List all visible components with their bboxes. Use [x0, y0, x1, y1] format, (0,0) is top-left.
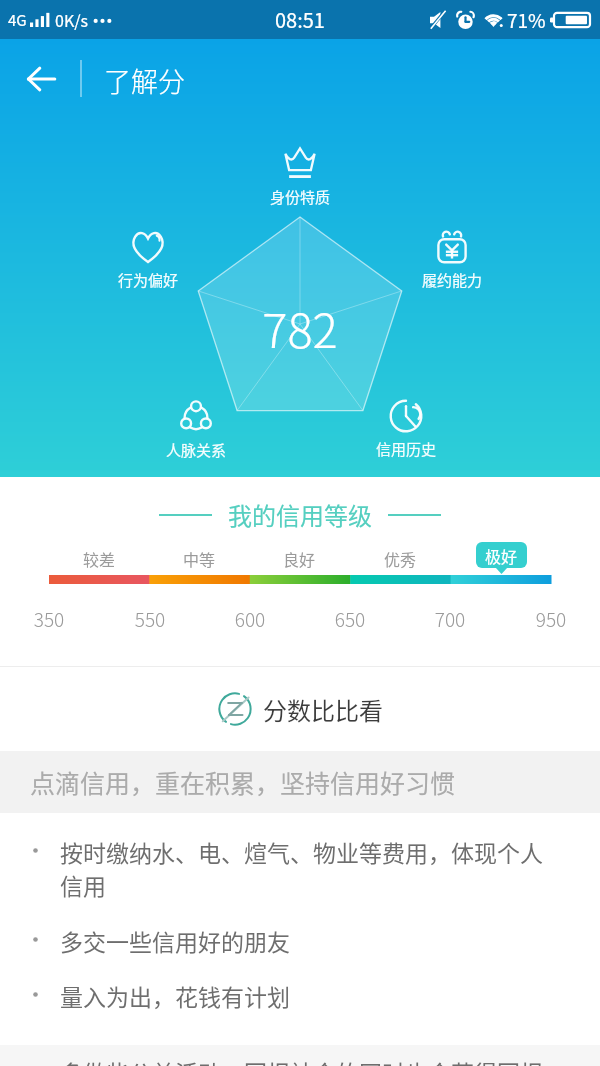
- button[interactable]: Back: [14, 52, 68, 106]
- staticText: 350: [9, 605, 89, 633]
- staticText: 650: [310, 605, 390, 633]
- staticText: 良好: [259, 547, 339, 570]
- staticText: 4G: [8, 9, 27, 31]
- staticText: 08:51: [275, 5, 325, 34]
- staticText: 550: [110, 605, 190, 633]
- staticText: 多做些公益活动，回报社会的同时也会获得回报: [60, 1055, 543, 1066]
- button[interactable]: 行为偏好: [98, 230, 198, 291]
- staticText: 950: [511, 605, 591, 633]
- button[interactable]: 信用历史: [356, 399, 456, 460]
- staticText: 了解分: [104, 61, 185, 100]
- staticText: 极好: [485, 544, 518, 567]
- staticText: 信用历史: [376, 438, 437, 460]
- staticText: 按时缴纳水、电、煊气、物业等费用，体现个人信用: [60, 835, 548, 902]
- button[interactable]: 分数比比看: [0, 667, 600, 751]
- staticText: 分数比比看: [263, 692, 383, 727]
- staticText: 点滴信用，重在积累，坚持信用好习惯: [30, 764, 456, 800]
- staticText: 782: [0, 293, 600, 361]
- staticText: 身份特质: [270, 186, 331, 208]
- staticText: 优秀: [360, 547, 440, 570]
- button[interactable]: 身份特质: [250, 147, 350, 208]
- staticText: 量入为出，花钱有计划: [60, 979, 290, 1012]
- staticText: 人脉关系: [166, 439, 227, 461]
- button[interactable]: 量入为出，花钱有计划: [0, 957, 600, 1012]
- button[interactable]: 人脉关系: [146, 400, 246, 461]
- staticText: 0K/s: [55, 8, 88, 31]
- staticText: 多交一些信用好的朋友: [60, 924, 290, 957]
- staticText: 中等: [159, 547, 239, 570]
- staticText: 行为偏好: [118, 269, 179, 291]
- button[interactable]: 履约能力: [402, 230, 502, 291]
- staticText: 我的信用等级: [228, 497, 372, 532]
- button[interactable]: 多做些公益活动，回报社会的同时也会获得回报: [0, 1045, 600, 1066]
- staticText: 700: [410, 605, 490, 633]
- staticText: 履约能力: [422, 269, 483, 291]
- staticText: 600: [210, 605, 290, 633]
- button[interactable]: 极好: [476, 542, 527, 568]
- staticText: 较差: [59, 547, 139, 570]
- staticText: 71%: [507, 6, 546, 34]
- button[interactable]: 按时缴纳水、电、煊气、物业等费用，体现个人信用: [0, 813, 600, 902]
- button[interactable]: 多交一些信用好的朋友: [0, 902, 600, 957]
